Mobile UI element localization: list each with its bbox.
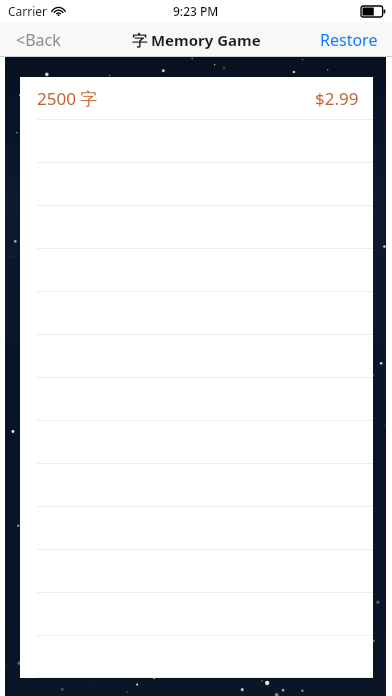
button[interactable]: 2500 字 bbox=[20, 77, 373, 120]
staticText: $2.99 bbox=[315, 87, 359, 110]
staticText: Carrier bbox=[8, 3, 48, 19]
staticText: <Back bbox=[16, 29, 61, 51]
staticText: 2500 字 bbox=[37, 87, 98, 110]
staticText: 9:23 PM bbox=[173, 3, 219, 19]
staticText: 字 Memory Game bbox=[132, 30, 261, 50]
button[interactable]: Restore bbox=[306, 23, 392, 57]
staticText: Restore bbox=[320, 29, 378, 51]
button[interactable]: <Back bbox=[0, 23, 75, 57]
